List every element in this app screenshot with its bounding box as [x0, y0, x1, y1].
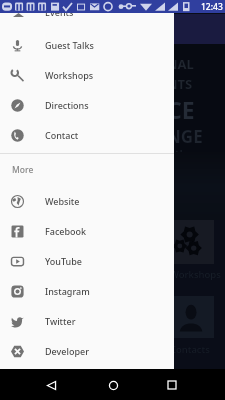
staticText: Events	[45, 6, 74, 18]
staticText: Workshops	[45, 69, 94, 81]
staticText: Directions	[45, 99, 89, 111]
button[interactable]: Contact	[0, 120, 174, 150]
button[interactable]: Workshops	[0, 60, 174, 90]
staticText: More	[12, 164, 34, 176]
staticText: YouTube	[45, 255, 82, 267]
button[interactable]: Facebook	[0, 216, 174, 246]
staticText: Instagram	[45, 285, 90, 297]
staticText: Guest Talks	[45, 39, 94, 51]
staticText: Developer	[45, 345, 89, 357]
button[interactable]: Directions	[0, 90, 174, 120]
staticText: NAL	[167, 55, 194, 73]
staticText: NTS	[167, 75, 193, 93]
button[interactable]: Twitter	[0, 306, 174, 336]
staticText: 12:43	[201, 1, 223, 13]
staticText: Workshops	[170, 268, 221, 281]
staticText: Twitter	[45, 315, 76, 327]
staticText: Contact	[45, 129, 79, 141]
staticText: NGE	[167, 125, 203, 148]
staticText: لاج	[167, 148, 184, 161]
button[interactable]: Developer	[0, 336, 174, 366]
staticText: Facebook	[45, 225, 87, 237]
staticText: Contacts	[170, 343, 210, 356]
staticText: Website	[45, 195, 80, 207]
staticText: CE	[167, 94, 195, 125]
button[interactable]: Recents	[161, 374, 183, 396]
button[interactable]: Back	[40, 374, 62, 396]
button[interactable]: Instagram	[0, 276, 174, 306]
button[interactable]: Home	[102, 374, 124, 396]
button[interactable]: Website	[0, 186, 174, 216]
button[interactable]: Guest Talks	[0, 30, 174, 60]
button[interactable]: YouTube	[0, 246, 174, 276]
